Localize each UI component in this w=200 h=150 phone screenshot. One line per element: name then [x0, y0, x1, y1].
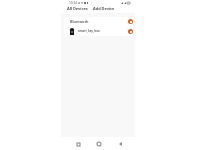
button[interactable]: Back [115, 139, 125, 149]
button[interactable]: smart_key_box [64, 26, 133, 36]
button[interactable]: All Devices [65, 4, 90, 12]
other: Device options [128, 19, 133, 24]
staticText: All Devices [67, 6, 88, 11]
button[interactable]: Home [94, 139, 104, 149]
other: Device options [128, 29, 133, 34]
staticText: Add Device [93, 6, 115, 11]
staticText: Bluetooth [70, 19, 89, 24]
button[interactable]: Recents [73, 139, 83, 149]
button[interactable]: Bluetooth [64, 17, 133, 26]
staticText: smart_key_box [78, 29, 100, 33]
staticText: 10:24 [69, 1, 77, 5]
button[interactable]: Add Device [91, 4, 117, 12]
